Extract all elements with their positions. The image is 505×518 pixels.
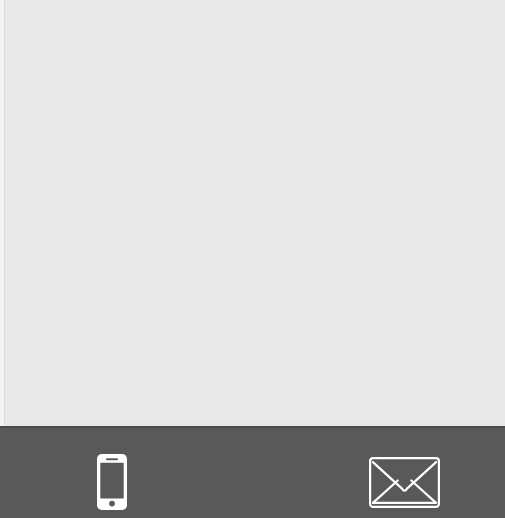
button[interactable]: Email [362,428,446,518]
button[interactable]: Call [70,428,154,518]
